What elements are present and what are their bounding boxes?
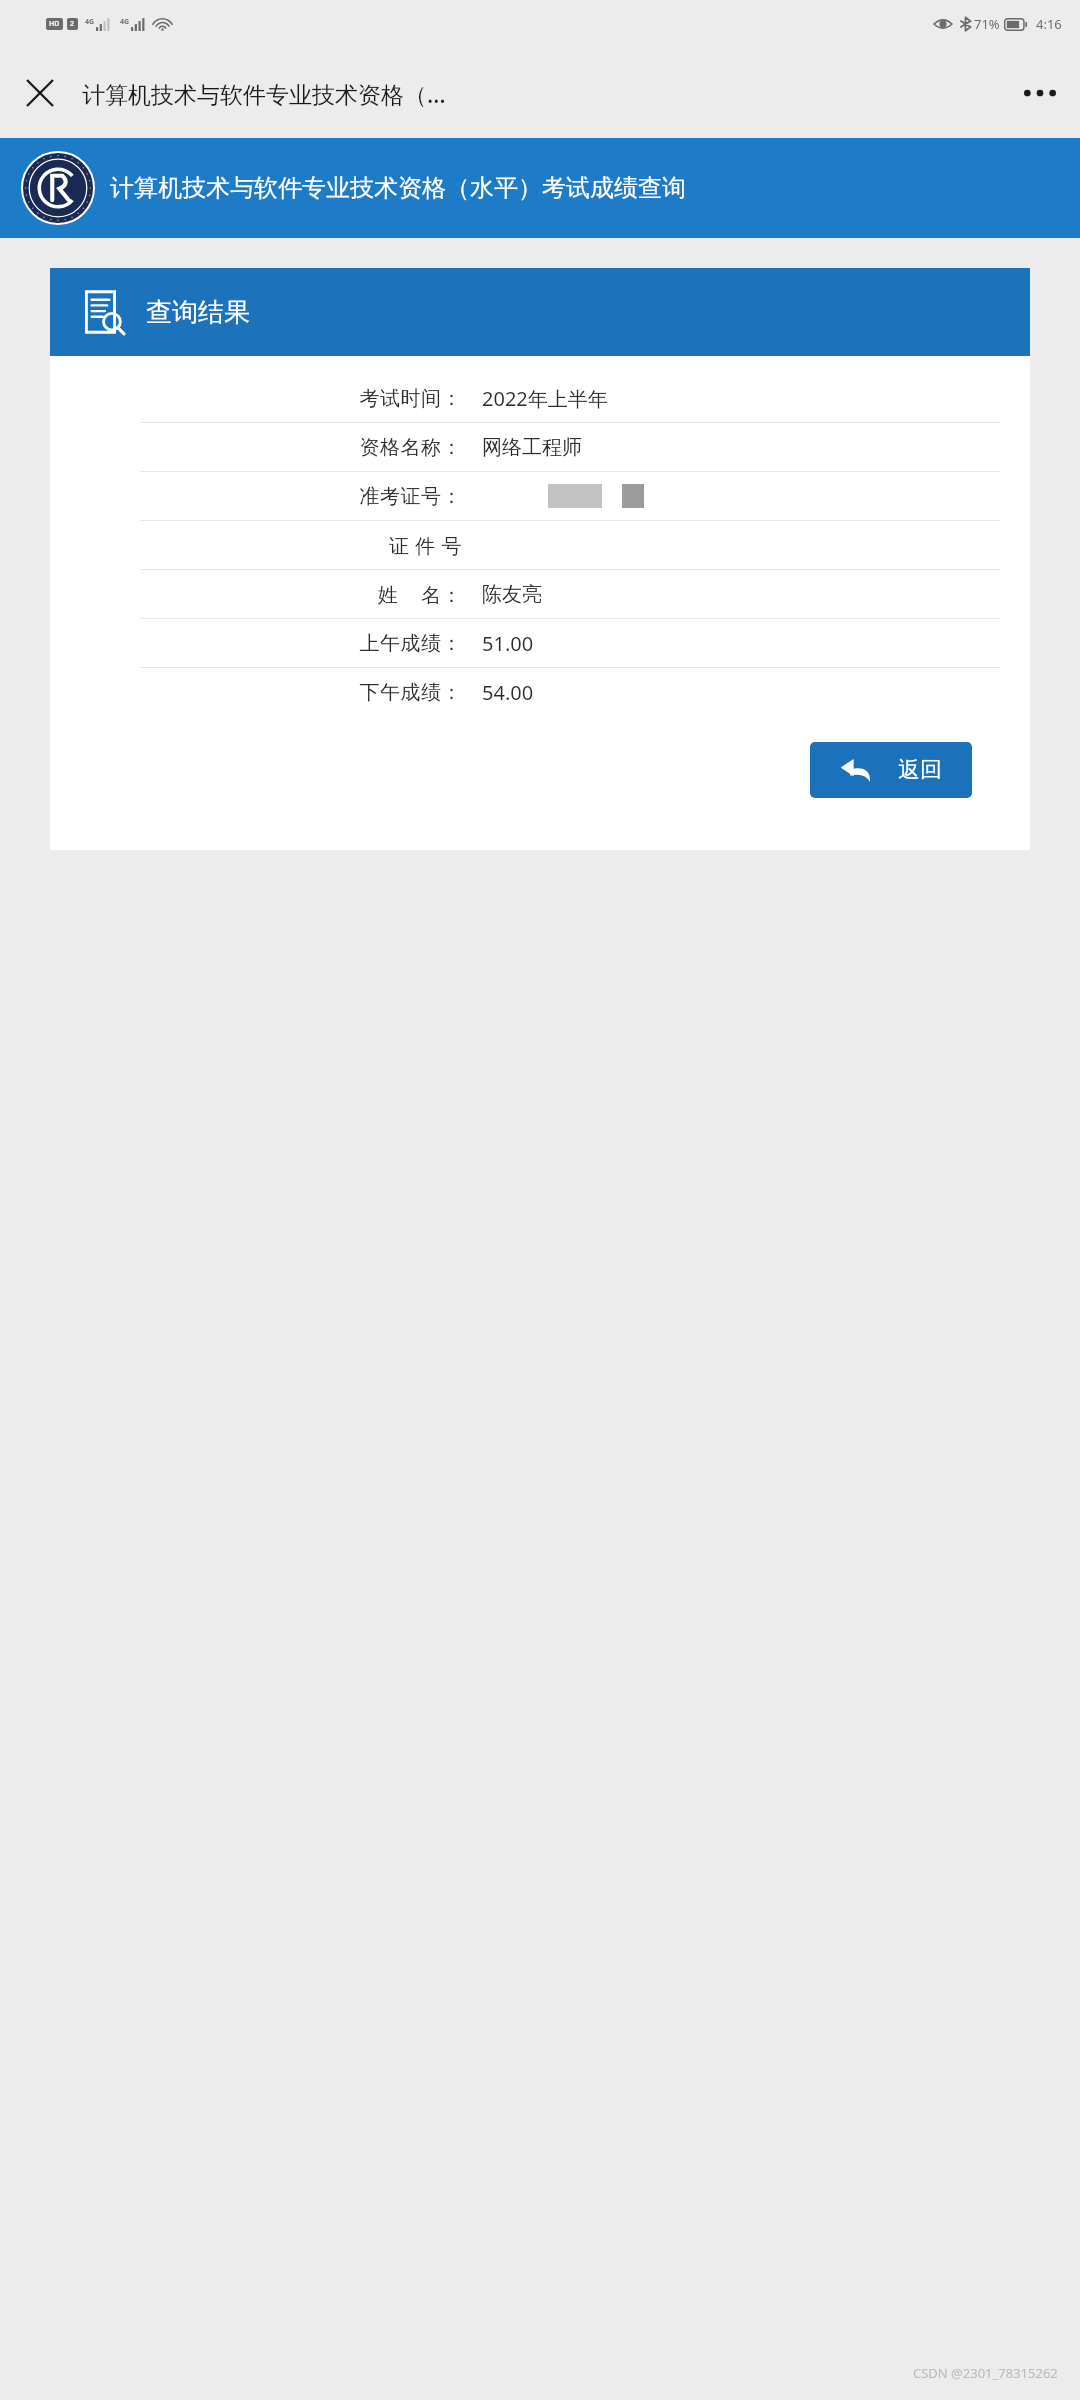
staticText: 准考证号： [50,484,462,509]
staticText: 2022年上半年 [482,385,608,412]
staticText: 54.00 [482,679,534,706]
staticText: 计算机技术与软件专业技术资格（水平）考试成绩查询 [110,173,686,203]
staticText: HD [49,19,60,29]
staticText: 返回 [898,756,942,784]
staticText: CSDN @2301_78315262 [913,2364,1058,2382]
staticText: 网络工程师 [482,435,582,460]
staticText: 证 件 号 [50,532,462,559]
staticText: 下午成绩： [50,680,462,705]
staticText: 4:16 [1036,15,1062,33]
staticText: 上午成绩： [50,631,462,656]
button[interactable]: More options [1012,65,1068,121]
staticText: 51.00 [482,630,534,657]
button[interactable]: Close [12,65,68,121]
button[interactable]: 返回 [810,742,972,798]
staticText: 4G [120,17,130,27]
staticText: 71% [974,15,1000,33]
staticText: 姓 名： [50,581,462,608]
staticText: 2 [70,19,75,29]
staticText: 4G [85,17,95,27]
staticText: 陈友亮 [482,582,542,607]
staticText: 查询结果 [146,296,250,329]
staticText: 计算机技术与软件专业技术资格（… [82,78,446,109]
staticText: 考试时间： [50,386,462,411]
staticText: 资格名称： [50,435,462,460]
